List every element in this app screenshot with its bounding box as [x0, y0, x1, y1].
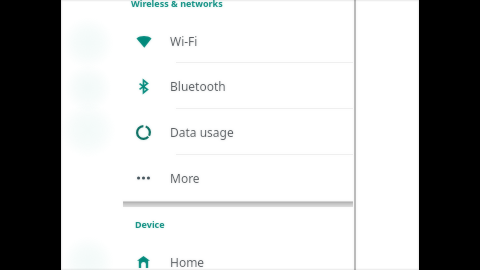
button[interactable]: Wi-Fi	[123, 18, 355, 64]
button[interactable]: Data usage	[123, 109, 355, 155]
button[interactable]: More	[123, 155, 355, 201]
staticText: Device	[135, 218, 165, 230]
staticText: Data usage	[170, 124, 234, 140]
button[interactable]: More	[123, 155, 355, 201]
staticText: Wireless & networks	[131, 0, 223, 9]
staticText: Bluetooth	[170, 78, 226, 94]
staticText: Wireless & networks	[131, 0, 223, 9]
staticText: More	[170, 170, 200, 186]
staticText: Home	[170, 254, 205, 270]
button[interactable]: Home	[123, 239, 355, 270]
staticText: Wi-Fi	[170, 33, 198, 49]
staticText: Data usage	[170, 124, 234, 140]
button[interactable]: Wi-Fi	[123, 18, 355, 64]
staticText: More	[170, 170, 200, 186]
staticText: Bluetooth	[170, 78, 226, 94]
staticText: Wi-Fi	[170, 33, 198, 49]
staticText: Home	[170, 254, 205, 270]
staticText: Device	[135, 218, 165, 230]
button[interactable]: Home	[123, 239, 355, 270]
button[interactable]: Data usage	[123, 109, 355, 155]
button[interactable]: Bluetooth	[123, 63, 355, 109]
button[interactable]: Bluetooth	[123, 63, 355, 109]
